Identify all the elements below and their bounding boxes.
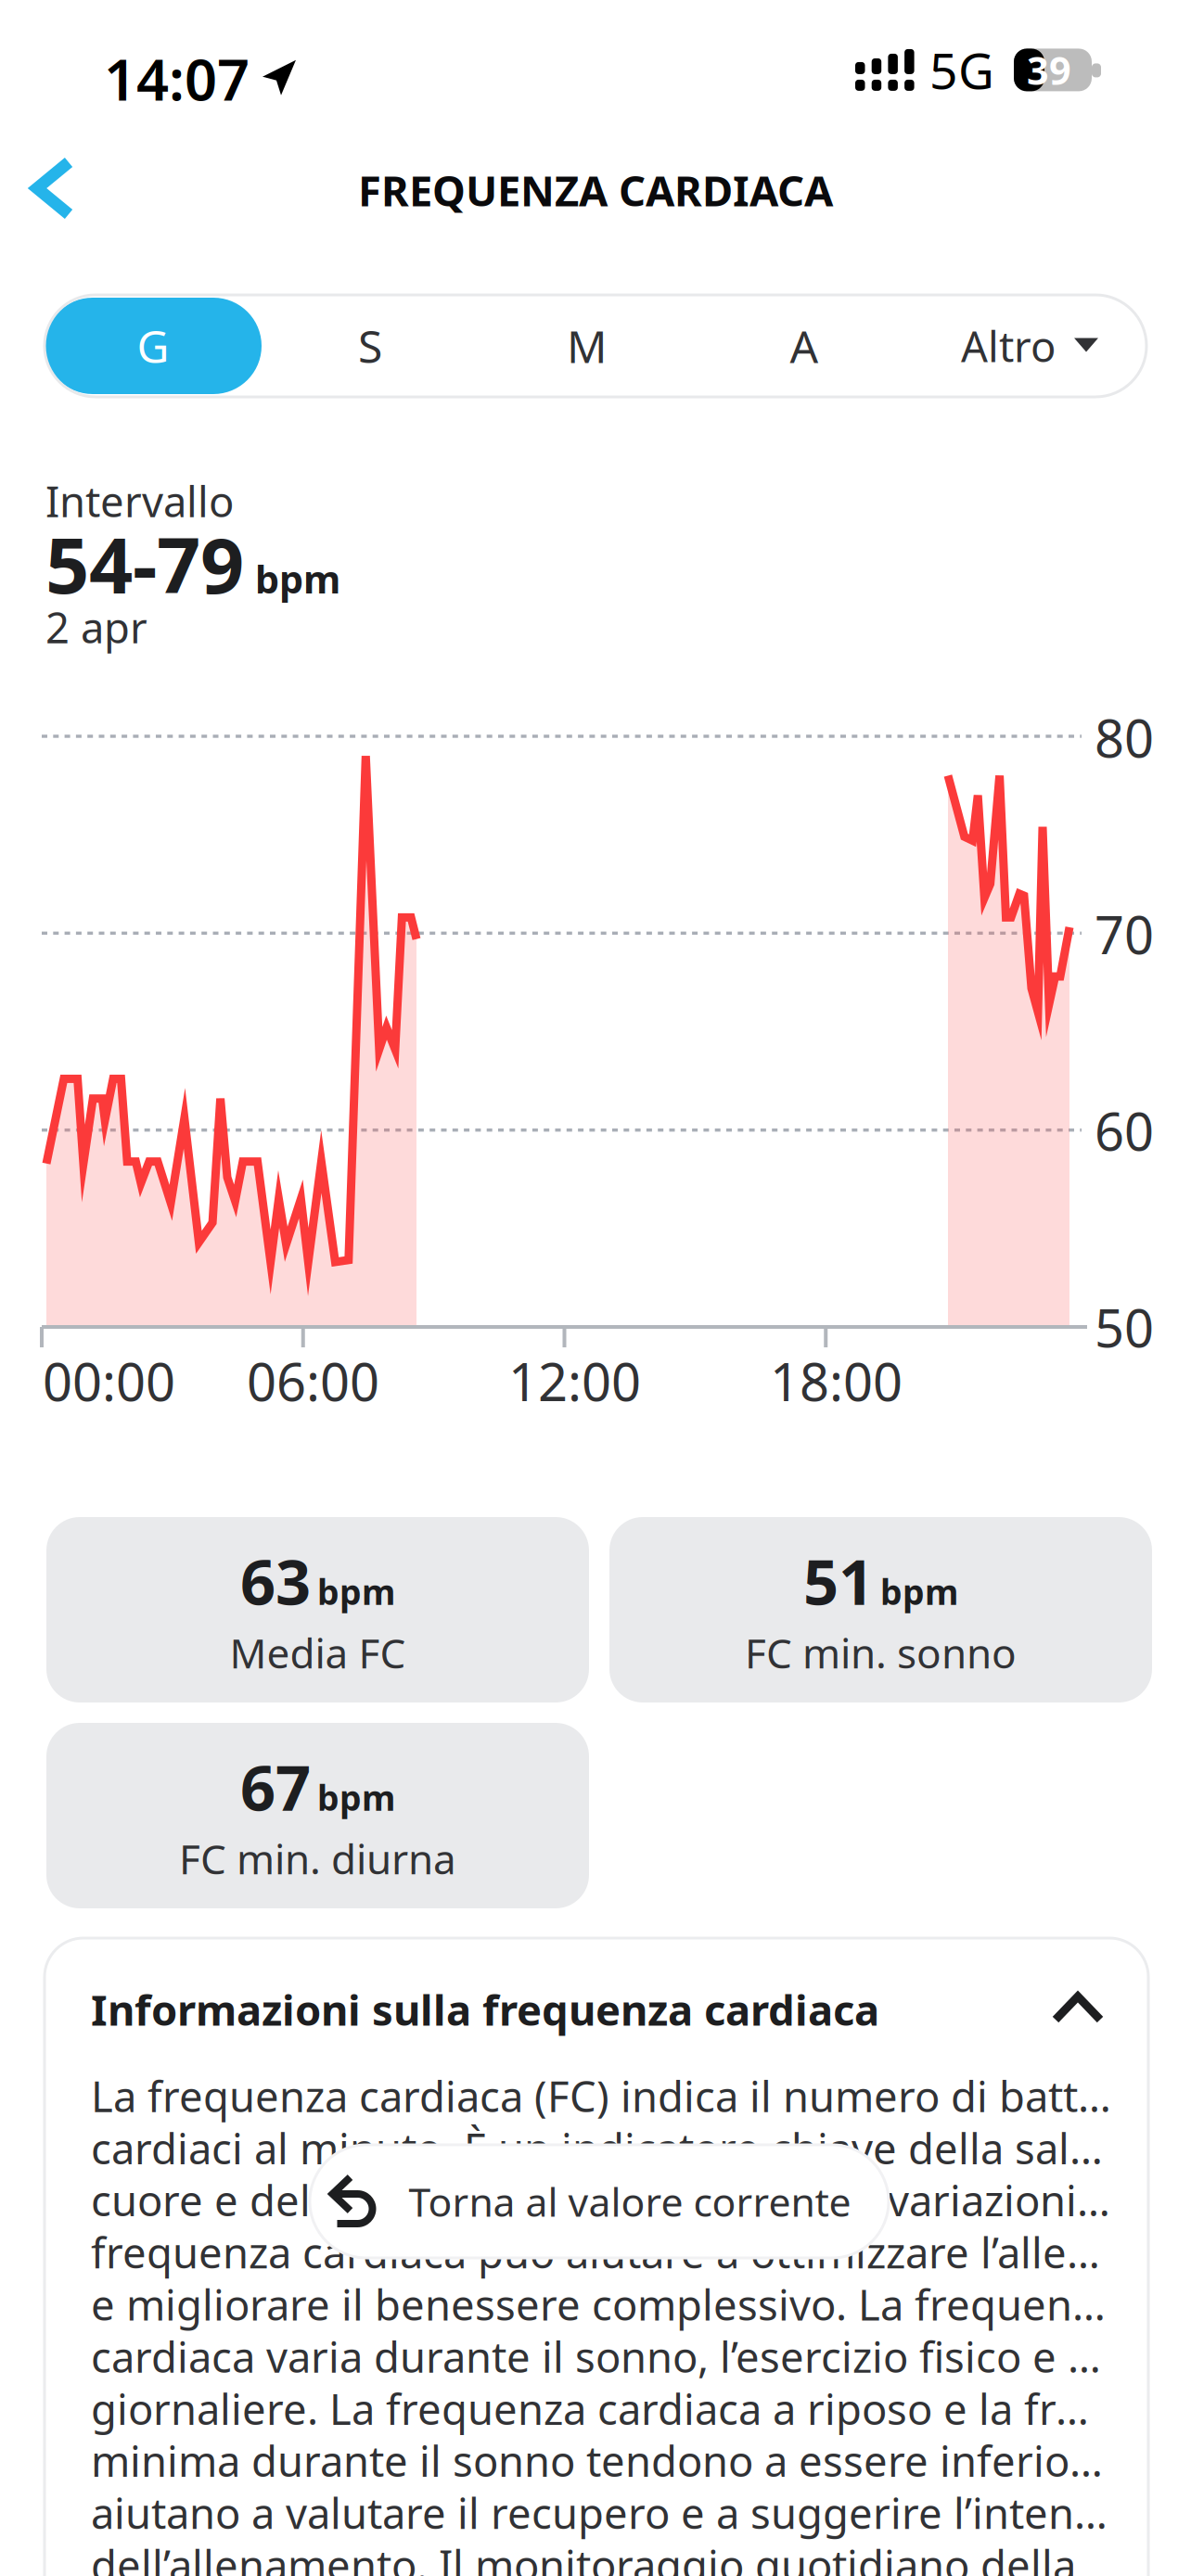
staticText: Media FC — [230, 1626, 406, 1680]
button[interactable]: Informazioni sulla frequenza cardiaca — [91, 1951, 1102, 2068]
staticText: La frequenza cardiaca (FC) indica il num… — [91, 2068, 1111, 2124]
staticText: aiutano a valutare il recupero e a sugge… — [91, 2485, 1111, 2541]
staticText: 51 — [803, 1540, 874, 1622]
button[interactable]: Altro — [913, 295, 1146, 397]
button[interactable]: M — [479, 298, 696, 394]
staticText: 18:00 — [770, 1346, 903, 1415]
staticText: cuore e della forma fisica. Monitorare l… — [91, 2172, 1111, 2228]
staticText: FC min. sonno — [745, 1626, 1017, 1680]
staticText: A — [790, 316, 819, 375]
button[interactable]: 63 — [46, 1517, 589, 1702]
staticText: bpm — [317, 1774, 395, 1820]
staticText: 06:00 — [247, 1346, 379, 1415]
staticText: 14:07 — [104, 41, 250, 116]
staticText: 60 — [1095, 1096, 1154, 1165]
staticText: 12:00 — [508, 1346, 641, 1415]
staticText: 54-79 — [45, 513, 244, 615]
staticText: cardiaca varia durante il sonno, l’eserc… — [91, 2328, 1111, 2384]
staticText: M — [567, 316, 608, 375]
staticText: 00:00 — [43, 1346, 175, 1415]
staticText: 50 — [1095, 1293, 1154, 1362]
staticText: giornaliere. La frequenza cardiaca a rip… — [91, 2381, 1111, 2436]
button[interactable]: G — [45, 298, 262, 394]
staticText: FC min. diurna — [179, 1831, 456, 1886]
staticText: e migliorare il benessere complessivo. L… — [91, 2276, 1111, 2332]
staticText: 70 — [1095, 899, 1154, 968]
staticText: Torna al valore corrente — [409, 2175, 851, 2228]
button[interactable]: Torna al valore corrente — [310, 2145, 889, 2258]
staticText: bpm — [880, 1568, 958, 1614]
staticText: bpm — [255, 553, 340, 604]
staticText: G — [137, 316, 169, 375]
staticText: 5G — [929, 37, 994, 103]
staticText: bpm — [317, 1568, 395, 1614]
button[interactable]: Indietro — [0, 130, 111, 250]
staticText: frequenza cardiaca può aiutare a ottimiz… — [91, 2224, 1111, 2280]
staticText: minima durante il sonno tendono a essere… — [91, 2433, 1111, 2488]
staticText: 2 apr — [45, 599, 147, 655]
button[interactable]: A — [696, 298, 913, 394]
staticText: 63 — [240, 1540, 311, 1622]
staticText: Informazioni sulla frequenza cardiaca — [91, 1982, 879, 2037]
staticText: cardiaci al minuto. È un indicatore chia… — [91, 2120, 1111, 2176]
staticText: 80 — [1095, 703, 1154, 772]
button[interactable]: S — [262, 298, 479, 394]
staticText: Altro — [961, 318, 1056, 374]
staticText: 67 — [240, 1746, 311, 1828]
button[interactable]: 51 — [609, 1517, 1152, 1702]
staticText: dell’allenamento. Il monitoraggio quotid… — [91, 2537, 1076, 2576]
staticText: S — [358, 316, 382, 375]
staticText: FREQUENZA CARDIACA — [358, 162, 833, 218]
staticText: Intervallo — [45, 473, 234, 529]
button[interactable]: 67 — [46, 1723, 589, 1908]
staticText: 39 — [1027, 45, 1071, 95]
